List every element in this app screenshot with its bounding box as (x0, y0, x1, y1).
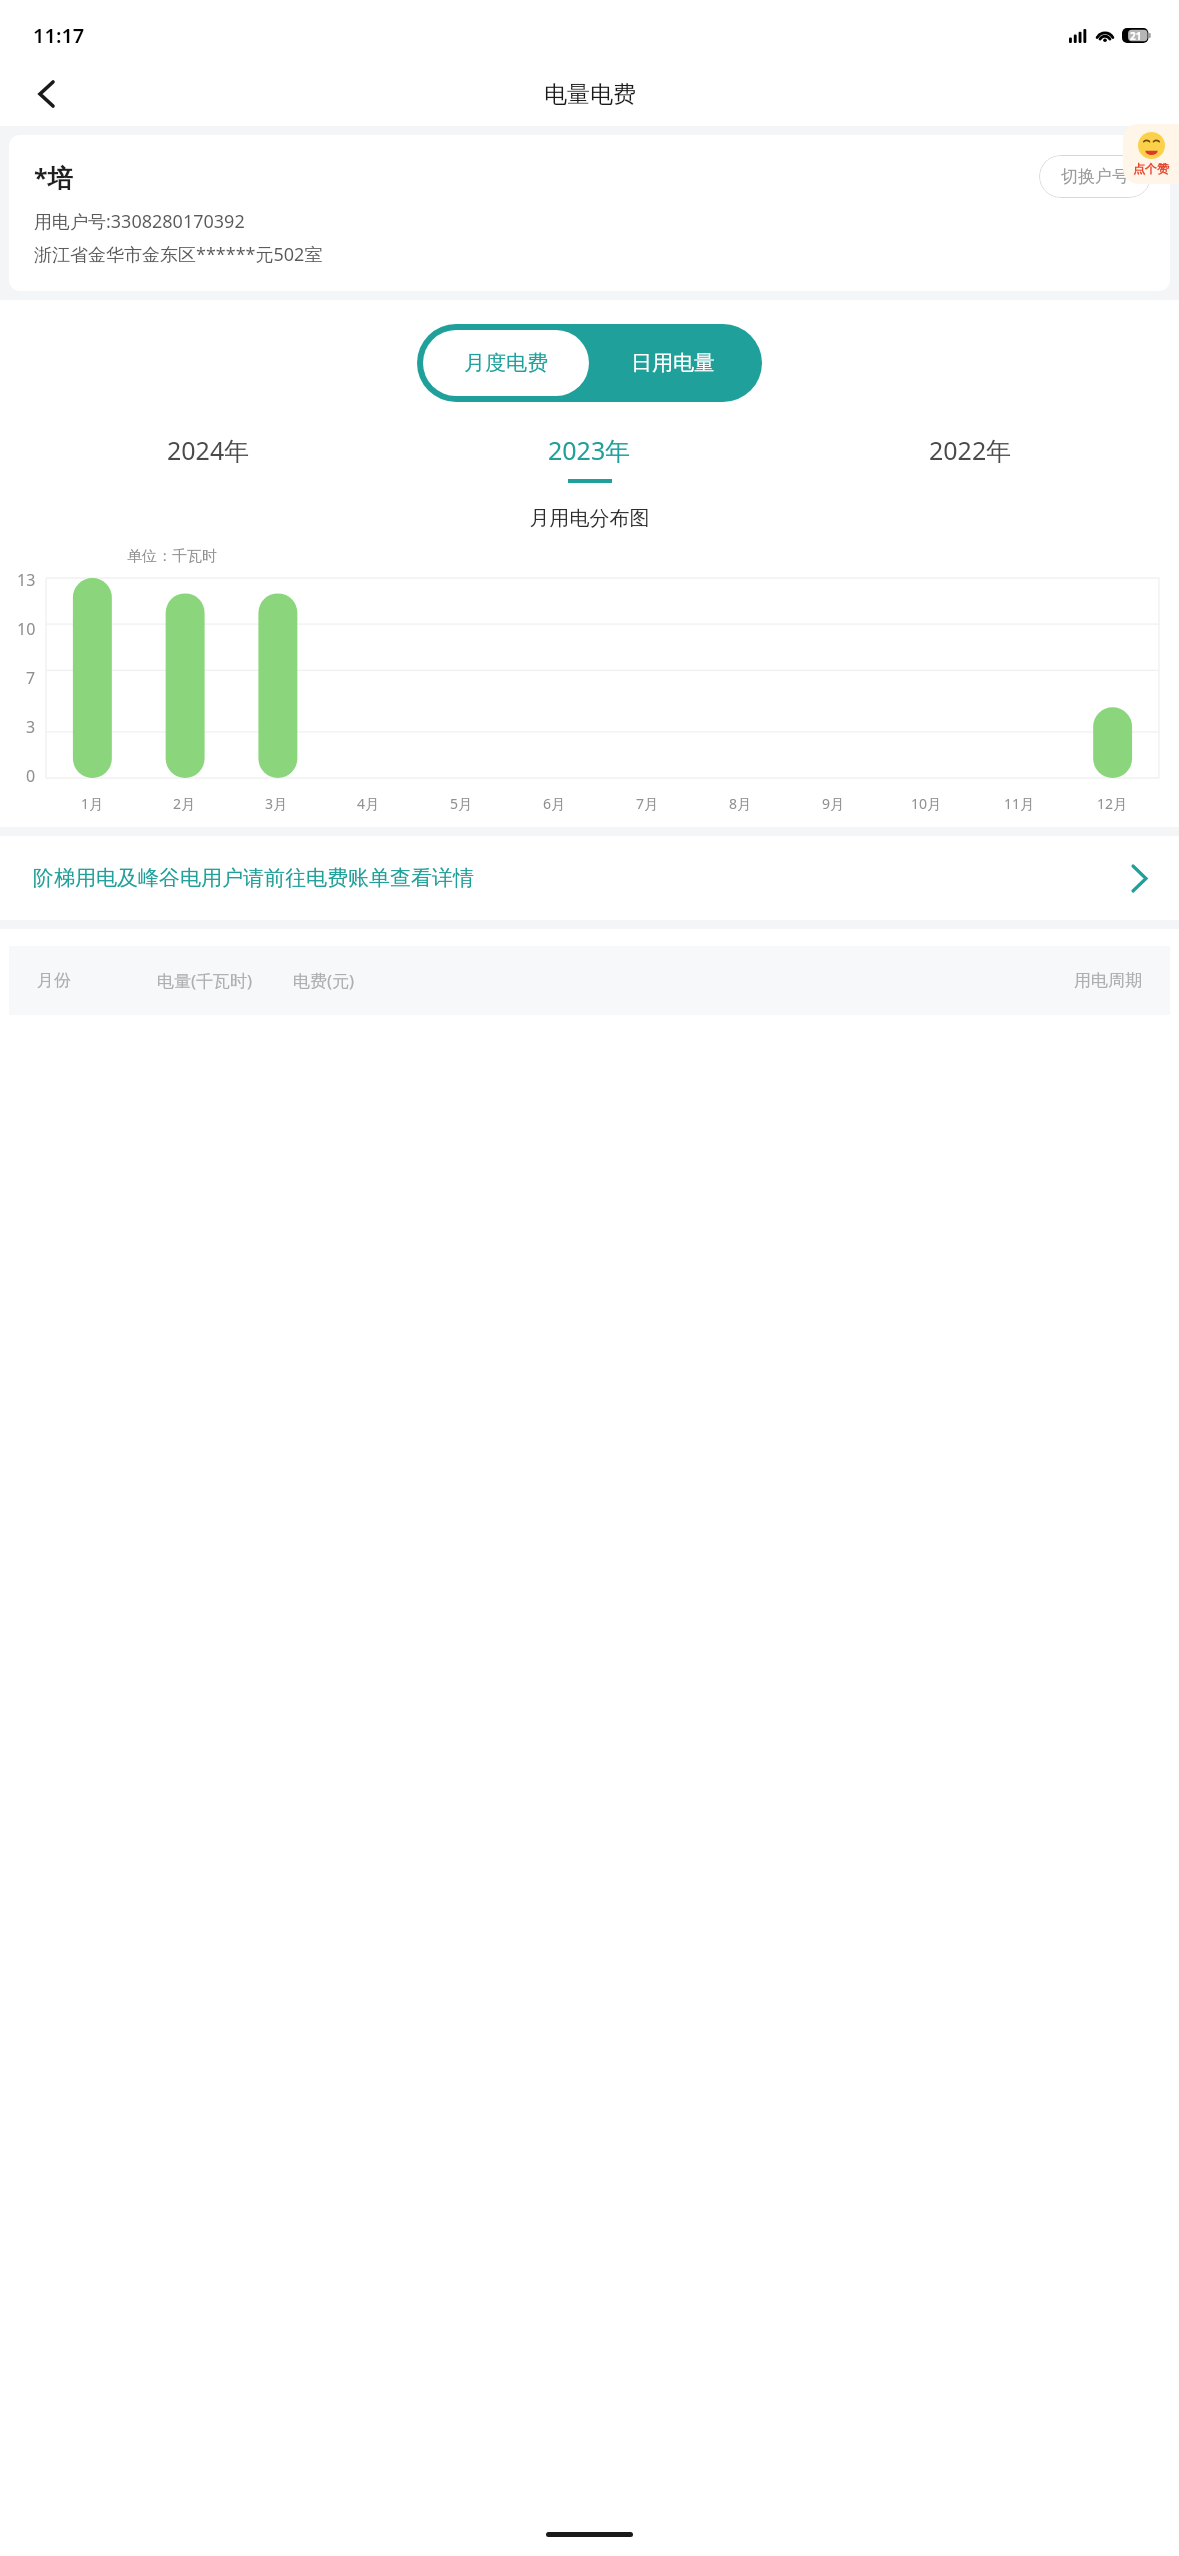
staticText: 电费(元) (293, 969, 355, 992)
button[interactable]: Back (22, 70, 70, 118)
staticText: 3 (26, 716, 36, 738)
staticText: 3月 (265, 794, 288, 813)
button[interactable]: 阶梯用电及峰谷电用户请前往电费账单查看详情 (0, 836, 1179, 920)
staticText: 月度电费 (464, 350, 548, 376)
staticText: *培 (34, 160, 73, 194)
staticText: 2023年 (548, 433, 631, 467)
staticText: 10月 (911, 794, 942, 813)
staticText: 2024年 (167, 433, 250, 467)
staticText: 日用电量 (631, 350, 715, 376)
staticText: 8月 (729, 794, 752, 813)
button[interactable]: 2023年 (399, 428, 780, 488)
button[interactable]: 日用电量 (589, 330, 756, 396)
staticText: 切换户号 (1061, 166, 1129, 187)
staticText: 2022年 (929, 433, 1012, 467)
button[interactable]: *培 (9, 135, 1170, 291)
staticText: 1月 (81, 794, 104, 813)
button[interactable]: 点个赞 (1123, 124, 1179, 184)
staticText: 6月 (543, 794, 566, 813)
staticText: 用电周期 (1074, 970, 1142, 991)
staticText: 7月 (636, 794, 659, 813)
button[interactable]: 2022年 (780, 428, 1161, 488)
staticText: 4月 (357, 794, 380, 813)
staticText: 单位：千瓦时 (127, 547, 217, 566)
button[interactable]: 月度电费 (423, 330, 589, 396)
staticText: 月用电分布图 (0, 506, 1179, 531)
staticText: 9月 (822, 794, 845, 813)
staticText: 10 (17, 618, 36, 640)
staticText: 12月 (1097, 794, 1128, 813)
staticText: 11月 (1004, 794, 1035, 813)
staticText: 7 (26, 667, 36, 689)
button[interactable]: 2024年 (18, 428, 399, 488)
button[interactable]: 切换户号 (1039, 155, 1151, 198)
staticText: 浙江省金华市金东区******元502室 (34, 242, 323, 267)
staticText: 5月 (450, 794, 473, 813)
staticText: 阶梯用电及峰谷电用户请前往电费账单查看详情 (33, 865, 474, 891)
staticText: 11:17 (33, 22, 85, 49)
staticText: 电量(千瓦时) (157, 969, 253, 992)
staticText: 月份 (37, 970, 107, 991)
staticText: 21 (1130, 29, 1142, 43)
staticText: 用电户号:3308280170392 (34, 209, 245, 234)
staticText: 13 (17, 569, 36, 591)
staticText: 电量电费 (544, 80, 636, 109)
staticText: 点个赞 (1133, 161, 1169, 176)
staticText: 2月 (173, 794, 196, 813)
staticText: 0 (26, 765, 36, 787)
